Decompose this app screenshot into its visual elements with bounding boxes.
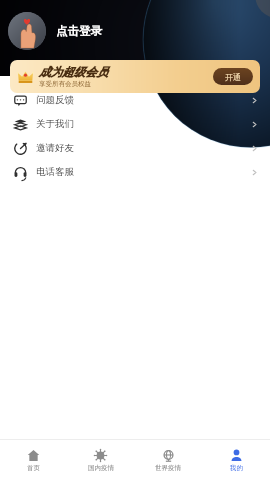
staticText: 邀请好友 [36,142,74,154]
button[interactable]: 我的 [202,440,270,480]
button[interactable]: 问题反馈 [0,88,270,112]
staticText: 点击登录 [56,24,102,38]
button[interactable]: 关于我们 [0,112,270,136]
button[interactable]: 国内疫情 [67,440,134,480]
button[interactable]: 成为超级会员 [10,60,260,93]
staticText: 成为超级会员 [39,65,108,79]
other: Avatar, tap to log in [8,12,46,50]
staticText: 享受所有会员权益 [39,80,91,88]
button[interactable]: 世界疫情 [134,440,202,480]
staticText: 开通 [225,72,241,82]
staticText: 问题反馈 [36,94,74,106]
button[interactable]: 电话客服 [0,160,270,184]
staticText: 关于我们 [36,118,74,130]
staticText: 首页 [27,464,40,472]
staticText: 电话客服 [36,166,74,178]
staticText: 国内疫情 [88,464,114,472]
button[interactable]: 开通 [213,68,253,85]
staticText: 世界疫情 [155,464,181,472]
button[interactable]: Avatar, tap to log in [8,12,110,50]
button[interactable]: 首页 [0,440,67,480]
staticText: 我的 [230,464,243,472]
button[interactable]: 邀请好友 [0,136,270,160]
